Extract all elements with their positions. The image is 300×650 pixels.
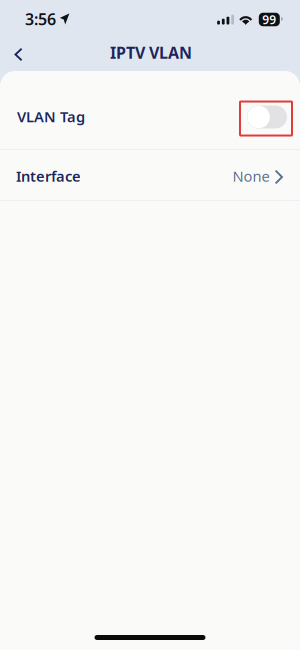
- button[interactable]: Interface: [0, 150, 300, 200]
- staticText: Interface: [16, 166, 81, 186]
- button[interactable]: VLAN Tag: [0, 71, 300, 149]
- staticText: IPTV VLAN: [110, 42, 192, 63]
- button[interactable]: Back: [3, 39, 34, 70]
- staticText: None: [233, 166, 270, 186]
- staticText: VLAN Tag: [17, 107, 85, 126]
- staticText: 99: [262, 11, 276, 27]
- staticText: 3:56: [25, 8, 56, 30]
